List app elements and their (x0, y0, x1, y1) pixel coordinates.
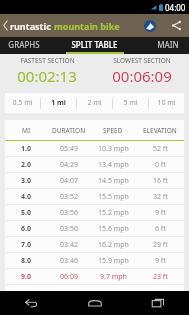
staticText: 15.5 mph (98, 192, 129, 202)
staticText: 8.0 (21, 256, 31, 266)
button[interactable]: 0.5 mi (5, 93, 40, 113)
button[interactable]: Map (137, 14, 163, 37)
staticText: 0.5 mi (12, 98, 33, 108)
staticText: 9.0 (21, 272, 31, 282)
button[interactable]: 1.0 (5, 141, 184, 157)
staticText: SPLIT TABLE (71, 39, 118, 50)
staticText: 15.9 mph (98, 256, 129, 266)
staticText: 15.6 mph (98, 224, 129, 234)
staticText: 6 ft (155, 224, 166, 234)
staticText: 00:06:09 (112, 66, 172, 86)
button[interactable]: 1 mi (41, 93, 76, 113)
staticText: 4.0 (21, 192, 31, 202)
button[interactable]: 5 mi (113, 93, 148, 113)
staticText: 16 ft (153, 176, 168, 186)
button[interactable]: Up (0, 14, 122, 37)
staticText: SPEED (103, 126, 123, 135)
button[interactable]: 5.0 (5, 205, 184, 221)
button[interactable]: Back (0, 291, 63, 315)
staticText: 9 ft (155, 256, 166, 266)
button[interactable]: 9.0 (5, 269, 184, 285)
staticText: ELEVATION (143, 126, 177, 135)
staticText: 10.3 mph (98, 144, 129, 154)
button[interactable]: 8.0 (5, 253, 184, 269)
staticText: 32 ft (153, 192, 168, 202)
staticText: 7.0 (21, 240, 31, 250)
staticText: 03:52 (60, 192, 78, 202)
staticText: 03:42 (60, 240, 78, 250)
button[interactable]: SPLIT TABLE (63, 37, 126, 54)
staticText: 03:50 (60, 224, 78, 234)
staticText: 03:46 (60, 256, 78, 266)
button[interactable]: 3.0 (5, 173, 184, 189)
staticText: SLOWEST SECTION (113, 56, 171, 65)
staticText: DURATION (52, 126, 86, 135)
staticText: MAIN (157, 39, 179, 50)
staticText: 03:56 (60, 208, 78, 218)
staticText: mountain bike (54, 20, 120, 32)
staticText: 9 ft (155, 208, 166, 218)
staticText: 2 mi (87, 98, 102, 108)
staticText: runtastic (10, 20, 51, 32)
staticText: 00:02:13 (17, 66, 77, 86)
staticText: FASTEST SECTION (20, 56, 75, 65)
staticText: 1 mi (51, 98, 66, 108)
staticText: 1.0 (21, 144, 31, 154)
button[interactable]: GRAPHS (0, 37, 63, 54)
staticText: 23 ft (153, 272, 168, 282)
staticText: 2.0 (21, 160, 31, 170)
staticText: 05:49 (60, 144, 78, 154)
button[interactable]: MAIN (126, 37, 189, 54)
staticText: GRAPHS (8, 39, 40, 50)
staticText: 10 mi (157, 98, 176, 108)
button[interactable]: 2.0 (5, 157, 184, 173)
staticText: 15.2 mph (98, 208, 129, 218)
button[interactable]: 7.0 (5, 237, 184, 253)
button[interactable]: 2 mi (77, 93, 112, 113)
staticText: 04:29 (60, 160, 78, 170)
button[interactable]: Recent apps (126, 291, 189, 315)
staticText: 9.7 mph (100, 272, 127, 282)
staticText: 6.0 (21, 224, 31, 234)
staticText: 04:07 (60, 176, 78, 186)
staticText: 14.5 mph (98, 176, 129, 186)
staticText: 04:00 (165, 2, 186, 13)
button[interactable]: Home (63, 291, 126, 315)
staticText: 29 ft (153, 240, 168, 250)
staticText: 5.0 (21, 208, 31, 218)
staticText: 3.0 (21, 176, 31, 186)
staticText: 13.4 mph (98, 160, 129, 170)
button[interactable]: 10 mi (149, 93, 184, 113)
staticText: 16.2 mph (98, 240, 129, 250)
staticText: 52 ft (153, 144, 168, 154)
staticText: 06:09 (60, 272, 78, 282)
button[interactable]: Share (163, 14, 189, 37)
staticText: MI (22, 126, 31, 135)
button[interactable]: 4.0 (5, 189, 184, 205)
staticText: 0 ft (155, 160, 166, 170)
button[interactable]: 6.0 (5, 221, 184, 237)
staticText: 5 mi (123, 98, 138, 108)
